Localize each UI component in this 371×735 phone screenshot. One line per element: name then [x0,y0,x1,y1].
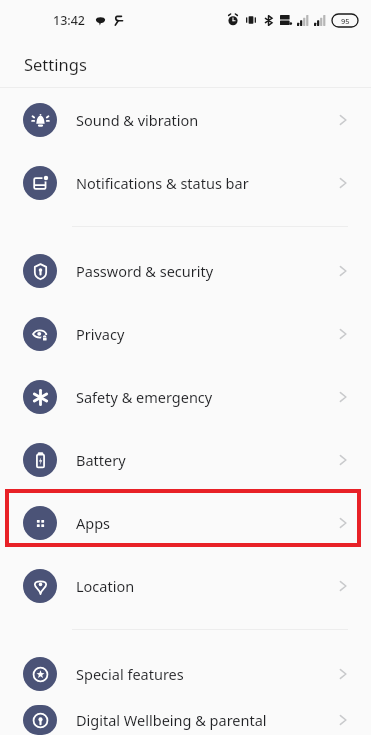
button[interactable]: Digital Wellbeing & parental [0,705,371,735]
staticText: 95 [341,16,350,26]
staticText: Apps [76,513,111,533]
staticText: Location [76,576,135,596]
staticText: Digital Wellbeing & parental [76,710,267,730]
staticText: Privacy [76,324,125,344]
staticText: Special features [76,664,184,684]
staticText: 13:42 [53,12,86,29]
staticText: Battery [76,450,126,470]
button[interactable]: Safety & emergency [0,365,371,428]
staticText: Settings [24,53,87,75]
button[interactable]: Battery [0,428,371,491]
button[interactable]: Sound & vibration [0,88,371,151]
staticText: Password & security [76,261,214,281]
staticText: Sound & vibration [76,110,199,130]
button[interactable]: Privacy [0,302,371,365]
button[interactable]: Apps [0,491,371,554]
button[interactable]: Password & security [0,239,371,302]
staticText: Notifications & status bar [76,173,249,193]
staticText: Safety & emergency [76,387,213,407]
button[interactable]: Location [0,554,371,617]
button[interactable]: Special features [0,642,371,705]
button[interactable]: Notifications & status bar [0,151,371,214]
